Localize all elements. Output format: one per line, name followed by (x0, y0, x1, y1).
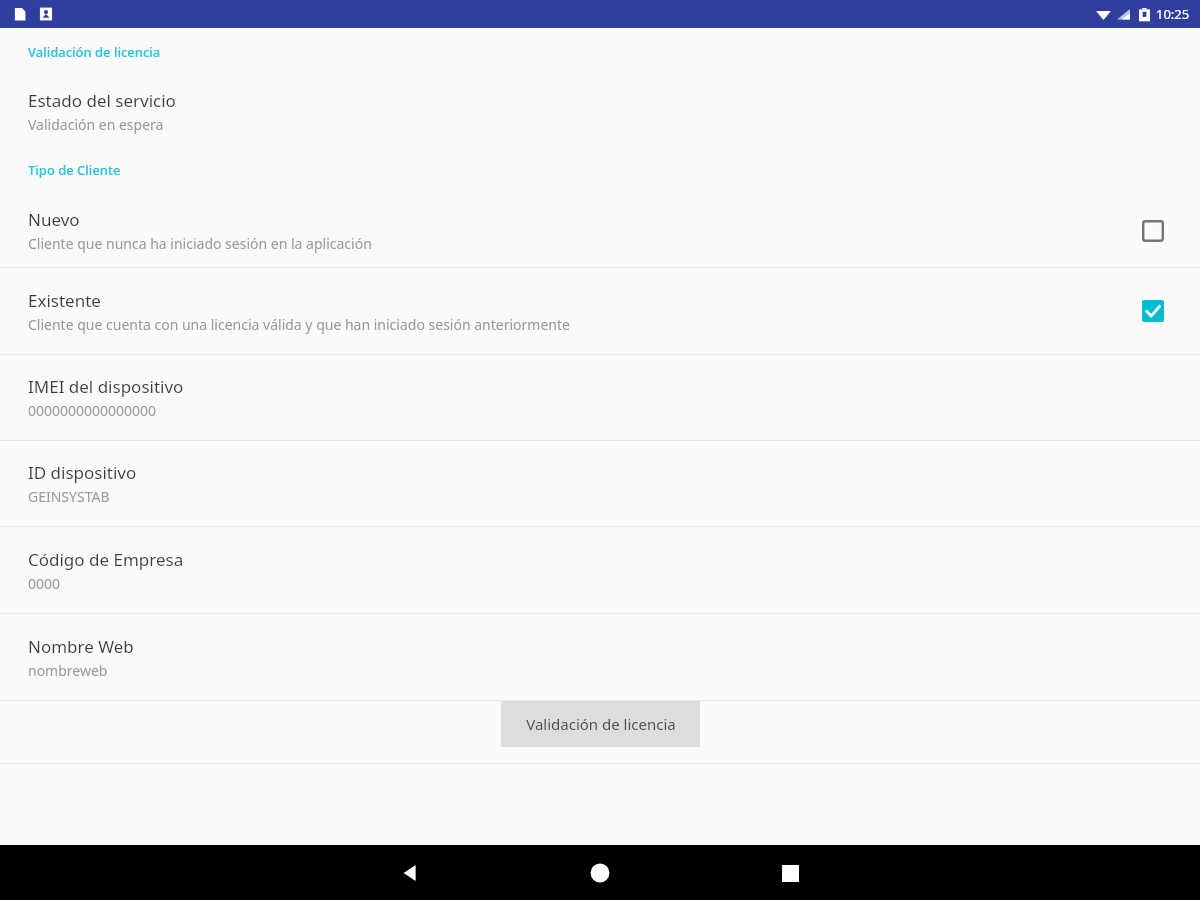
staticText: ID dispositivo (28, 461, 137, 484)
staticText: Validación de licencia (28, 43, 161, 61)
staticText: Código de Empresa (28, 548, 184, 571)
button[interactable]: Nuevo (0, 194, 1200, 267)
staticText: Existente (28, 289, 101, 312)
staticText: Validación de licencia (526, 714, 676, 734)
staticText: 0000000000000000 (28, 401, 157, 420)
staticText: 10:25 (1156, 5, 1190, 23)
staticText: GEINSYSTAB (28, 487, 110, 506)
staticText: Estado del servicio (28, 89, 176, 112)
staticText: nombreweb (28, 661, 108, 680)
staticText: Validación en espera (28, 115, 164, 134)
button[interactable]: Back (386, 849, 434, 897)
staticText: IMEI del dispositivo (28, 375, 184, 398)
button[interactable]: Validación de licencia (501, 701, 700, 747)
button[interactable]: ID dispositivo (0, 441, 1200, 526)
staticText: Nombre Web (28, 635, 134, 658)
button[interactable]: Recent apps (766, 849, 814, 897)
button[interactable]: Existente (0, 268, 1200, 354)
button[interactable]: Home (576, 849, 624, 897)
staticText: Cliente que nunca ha iniciado sesión en … (28, 234, 372, 253)
button[interactable]: IMEI del dispositivo (0, 355, 1200, 440)
staticText: Nuevo (28, 208, 80, 231)
button[interactable]: Estado del servicio (0, 76, 1200, 146)
staticText: Tipo de Cliente (28, 161, 121, 179)
staticText: 0000 (28, 574, 61, 593)
button[interactable]: Nombre Web (0, 614, 1200, 700)
staticText: Cliente que cuenta con una licencia váli… (28, 315, 570, 334)
button[interactable]: Código de Empresa (0, 527, 1200, 613)
